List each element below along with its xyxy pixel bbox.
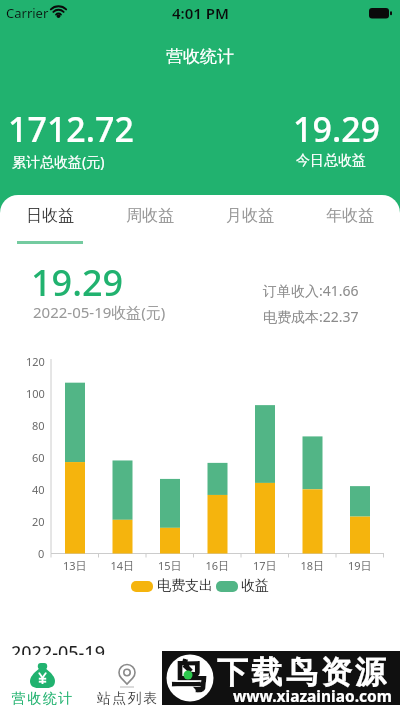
staticText: 月收益 [226,206,274,226]
staticText: 1712.72 [8,106,134,152]
staticText: 2022-05-19收益(元) [33,302,166,322]
button[interactable]: 日收益 [0,195,100,237]
staticText: 4:01 PM [172,3,229,23]
button[interactable]: 营收统计 [8,663,76,708]
staticText: Carrier [6,4,49,22]
button[interactable]: 周收益 [100,195,200,237]
button[interactable]: 站点列表 [93,663,161,708]
staticText: 营收统计 [11,690,73,708]
staticText: 下载鸟资源 [217,653,390,692]
staticText: 年收益 [326,206,374,226]
staticText: 今日总收益 [296,152,366,170]
staticText: 站点列表 [96,690,158,708]
staticText: 电费成本:22.37 [263,307,359,326]
staticText: 19.29 [293,106,381,152]
staticText: 订单收入:41.66 [263,281,359,300]
staticText: 收益 [241,577,269,595]
staticText: 鸟 [172,655,206,698]
staticText: 累计总收益(元) [12,152,105,171]
button[interactable]: 月收益 [200,195,300,237]
staticText: www.xiazainiao.com [233,685,392,706]
staticText: 周收益 [126,206,174,226]
staticText: 日收益 [26,206,74,226]
staticText: 19.29 [31,258,124,307]
staticText: 电费支出 [157,577,213,595]
staticText: 营收统计 [166,46,234,67]
staticText: 2022-05-19 [11,640,105,665]
button[interactable]: 年收益 [300,195,400,237]
